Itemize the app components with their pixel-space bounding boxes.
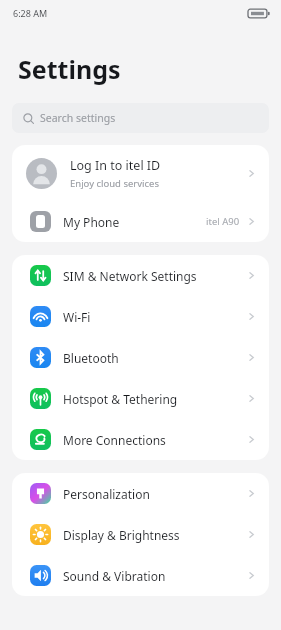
staticText: More Connections — [63, 432, 166, 448]
staticText: itel A90 — [206, 215, 240, 228]
button[interactable]: SIM & Network Settings — [12, 255, 269, 296]
button[interactable]: Bluetooth — [12, 337, 269, 378]
button[interactable]: Search settings — [12, 103, 269, 133]
button[interactable]: Sound & Vibration — [12, 555, 269, 596]
button[interactable]: Hotspot & Tethering — [12, 378, 269, 419]
button[interactable]: Display & Brightness — [12, 514, 269, 555]
staticText: Hotspot & Tethering — [63, 391, 178, 407]
staticText: Bluetooth — [63, 350, 119, 366]
staticText: Enjoy cloud services — [70, 177, 159, 190]
staticText: Search settings — [40, 111, 116, 125]
other: Battery — [248, 8, 270, 19]
staticText: Sound & Vibration — [63, 568, 166, 584]
staticText: Personalization — [63, 486, 150, 502]
button[interactable]: Wi-Fi — [12, 296, 269, 337]
button[interactable]: More Connections — [12, 419, 269, 460]
button[interactable]: Personalization — [12, 473, 269, 514]
button[interactable]: My Phone — [12, 201, 269, 242]
staticText: Log In to itel ID — [70, 157, 161, 174]
staticText: Display & Brightness — [63, 527, 180, 543]
staticText: SIM & Network Settings — [63, 268, 197, 284]
button[interactable]: Log In to itel ID — [12, 145, 269, 201]
staticText: Settings — [18, 52, 121, 86]
staticText: My Phone — [63, 214, 120, 230]
staticText: Wi-Fi — [63, 309, 91, 325]
staticText: 6:28 AM — [13, 7, 48, 19]
